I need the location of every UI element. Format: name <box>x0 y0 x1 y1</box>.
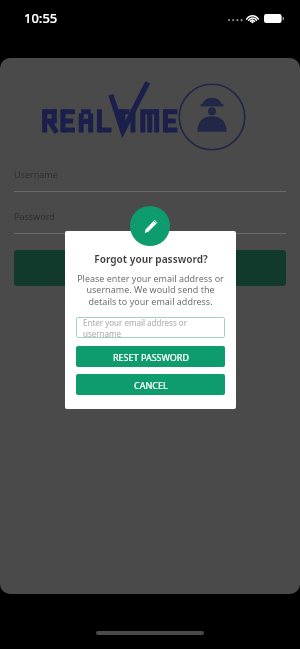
staticText: Please enter your email address or usern… <box>76 272 225 308</box>
button[interactable]: Enter your email address or username <box>76 317 225 338</box>
staticText: Password <box>14 210 55 222</box>
staticText: Username <box>14 168 58 180</box>
button[interactable] <box>14 250 286 286</box>
staticText: RESET PASSWORD <box>113 351 189 363</box>
button[interactable]: RESET PASSWORD <box>76 346 225 367</box>
staticText: 10:55 <box>24 9 58 27</box>
staticText: CANCEL <box>134 379 168 391</box>
staticText: Forgot your password? <box>94 252 208 266</box>
button[interactable]: Password <box>14 210 286 234</box>
button[interactable]: Edit <box>130 206 170 246</box>
staticText: Enter your email address or username <box>83 317 218 338</box>
button[interactable]: Username <box>14 168 286 192</box>
button[interactable]: CANCEL <box>76 374 225 395</box>
